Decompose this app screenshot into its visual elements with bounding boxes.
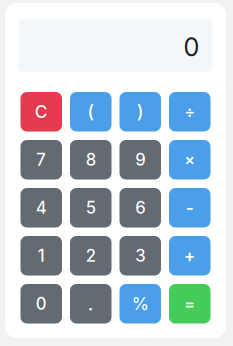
staticText: ( [87,100,94,123]
button[interactable]: 2 [70,236,111,275]
button[interactable]: 6 [119,188,161,227]
staticText: 4 [36,198,47,218]
button[interactable]: . [70,284,111,323]
staticText: % [132,293,149,314]
button[interactable]: ÷ [169,92,210,131]
button[interactable]: + [169,236,210,275]
staticText: 2 [86,246,96,266]
staticText: C [35,101,48,122]
staticText: 1 [38,246,45,266]
button[interactable]: ( [70,92,111,131]
button[interactable]: 5 [70,188,111,227]
button[interactable]: 0 [20,284,62,323]
button[interactable]: % [119,284,161,323]
button[interactable]: 9 [119,140,161,179]
staticText: - [186,197,194,218]
staticText: = [184,294,195,313]
button[interactable]: 3 [119,236,161,275]
staticText: 5 [86,198,96,218]
button[interactable]: = [169,284,210,323]
staticText: 3 [135,246,145,266]
button[interactable]: 8 [70,140,111,179]
staticText: 0 [183,32,199,62]
staticText: . [88,292,94,315]
staticText: ) [137,100,144,123]
button[interactable]: × [169,140,210,179]
staticText: 7 [36,150,46,170]
staticText: 0 [36,294,47,314]
button[interactable]: ) [119,92,161,131]
button[interactable]: 7 [20,140,62,179]
button[interactable]: C [20,92,62,131]
staticText: 6 [135,198,145,218]
button[interactable]: 1 [20,236,62,275]
staticText: × [184,150,195,169]
button[interactable]: 4 [20,188,62,227]
staticText: + [184,245,196,266]
staticText: ÷ [184,102,195,121]
staticText: 9 [135,150,145,170]
button[interactable]: - [169,188,210,227]
staticText: 8 [86,150,96,170]
